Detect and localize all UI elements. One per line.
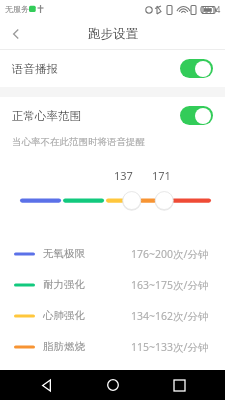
- staticText: 跑步设置: [88, 26, 138, 42]
- staticText: 09:14: [200, 4, 221, 15]
- button[interactable]: Back: [0, 18, 32, 50]
- staticText: 137: [114, 168, 133, 183]
- staticText: 语音播报: [12, 62, 58, 76]
- staticText: 耐力强化: [43, 278, 85, 291]
- staticText: 当心率不在此范围时将语音提醒: [12, 136, 145, 148]
- button[interactable]: 耐力强化: [0, 269, 225, 300]
- button[interactable]: 语音播报: [0, 50, 225, 87]
- button[interactable]: 无氧极限: [0, 238, 225, 269]
- other: 正常心率范围 toggle: [180, 106, 213, 125]
- staticText: 134~162次/分钟: [131, 309, 209, 323]
- staticText: 115~133次/分钟: [131, 340, 209, 354]
- staticText: 脂肪燃烧: [43, 340, 85, 353]
- other: 语音播报 toggle: [180, 59, 213, 78]
- button[interactable]: Back: [26, 370, 66, 400]
- staticText: 心肺强化: [43, 309, 85, 322]
- staticText: 无服务: [5, 4, 29, 14]
- staticText: 171: [152, 168, 171, 183]
- button[interactable]: 脂肪燃烧: [0, 331, 225, 362]
- staticText: 正常心率范围: [12, 109, 81, 123]
- staticText: 163~175次/分钟: [131, 278, 209, 292]
- button[interactable]: Home: [93, 370, 133, 400]
- button[interactable]: 正常心率范围: [0, 97, 225, 134]
- staticText: 无氧极限: [43, 247, 85, 260]
- staticText: 176~200次/分钟: [131, 247, 209, 261]
- button[interactable]: 心肺强化: [0, 300, 225, 331]
- button[interactable]: Recents: [159, 370, 199, 400]
